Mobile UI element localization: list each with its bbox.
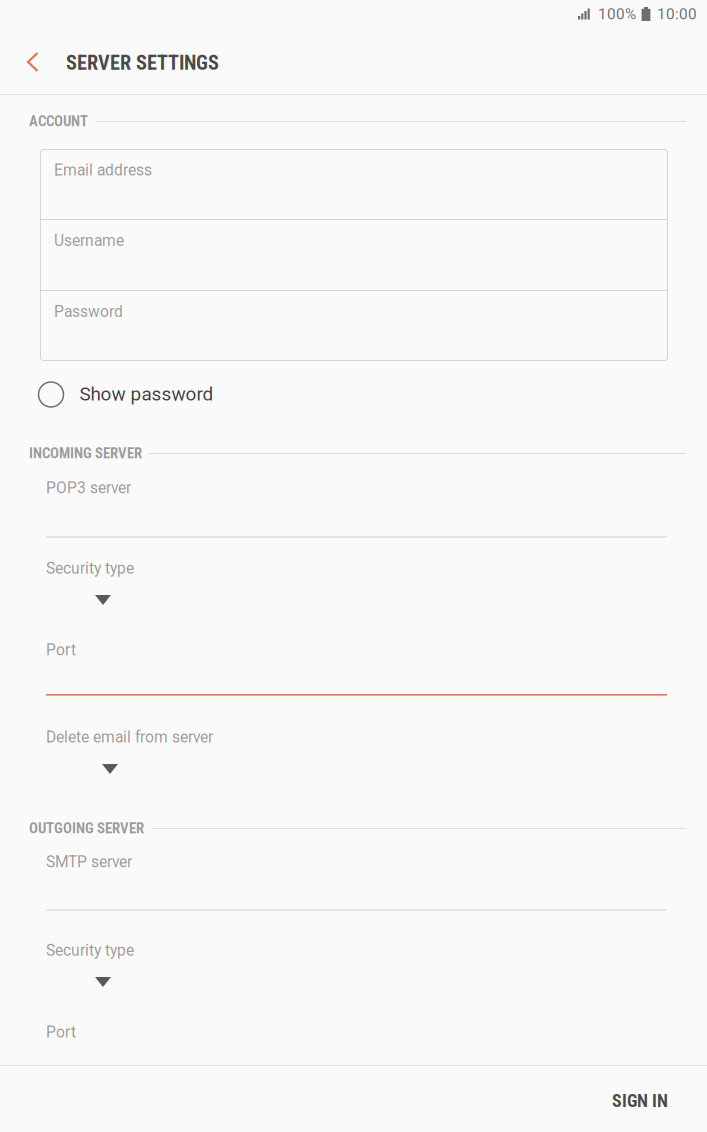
staticText: Security type xyxy=(46,941,134,960)
staticText: Password xyxy=(54,302,123,321)
staticText: SIGN IN xyxy=(612,1090,668,1111)
staticText: INCOMING SERVER xyxy=(29,444,142,462)
button[interactable]: SIGN IN xyxy=(585,1068,695,1132)
staticText: Email address xyxy=(54,161,152,179)
staticText: Port xyxy=(46,1023,76,1041)
staticText: Port xyxy=(46,641,76,659)
staticText: Show password xyxy=(79,383,213,405)
staticText: Security type xyxy=(46,559,134,578)
staticText: 100% xyxy=(598,5,636,23)
staticText: SERVER SETTINGS xyxy=(66,51,219,75)
staticText: 10:00 xyxy=(657,5,697,23)
staticText: SMTP server xyxy=(46,853,132,871)
staticText: POP3 server xyxy=(46,479,131,497)
staticText: Username xyxy=(54,231,124,250)
staticText: ACCOUNT xyxy=(29,112,88,130)
staticText: Delete email from server xyxy=(46,728,213,746)
button[interactable]: Show password xyxy=(27,373,277,417)
button[interactable]: Back xyxy=(0,34,56,90)
staticText: OUTGOING SERVER xyxy=(29,819,144,837)
